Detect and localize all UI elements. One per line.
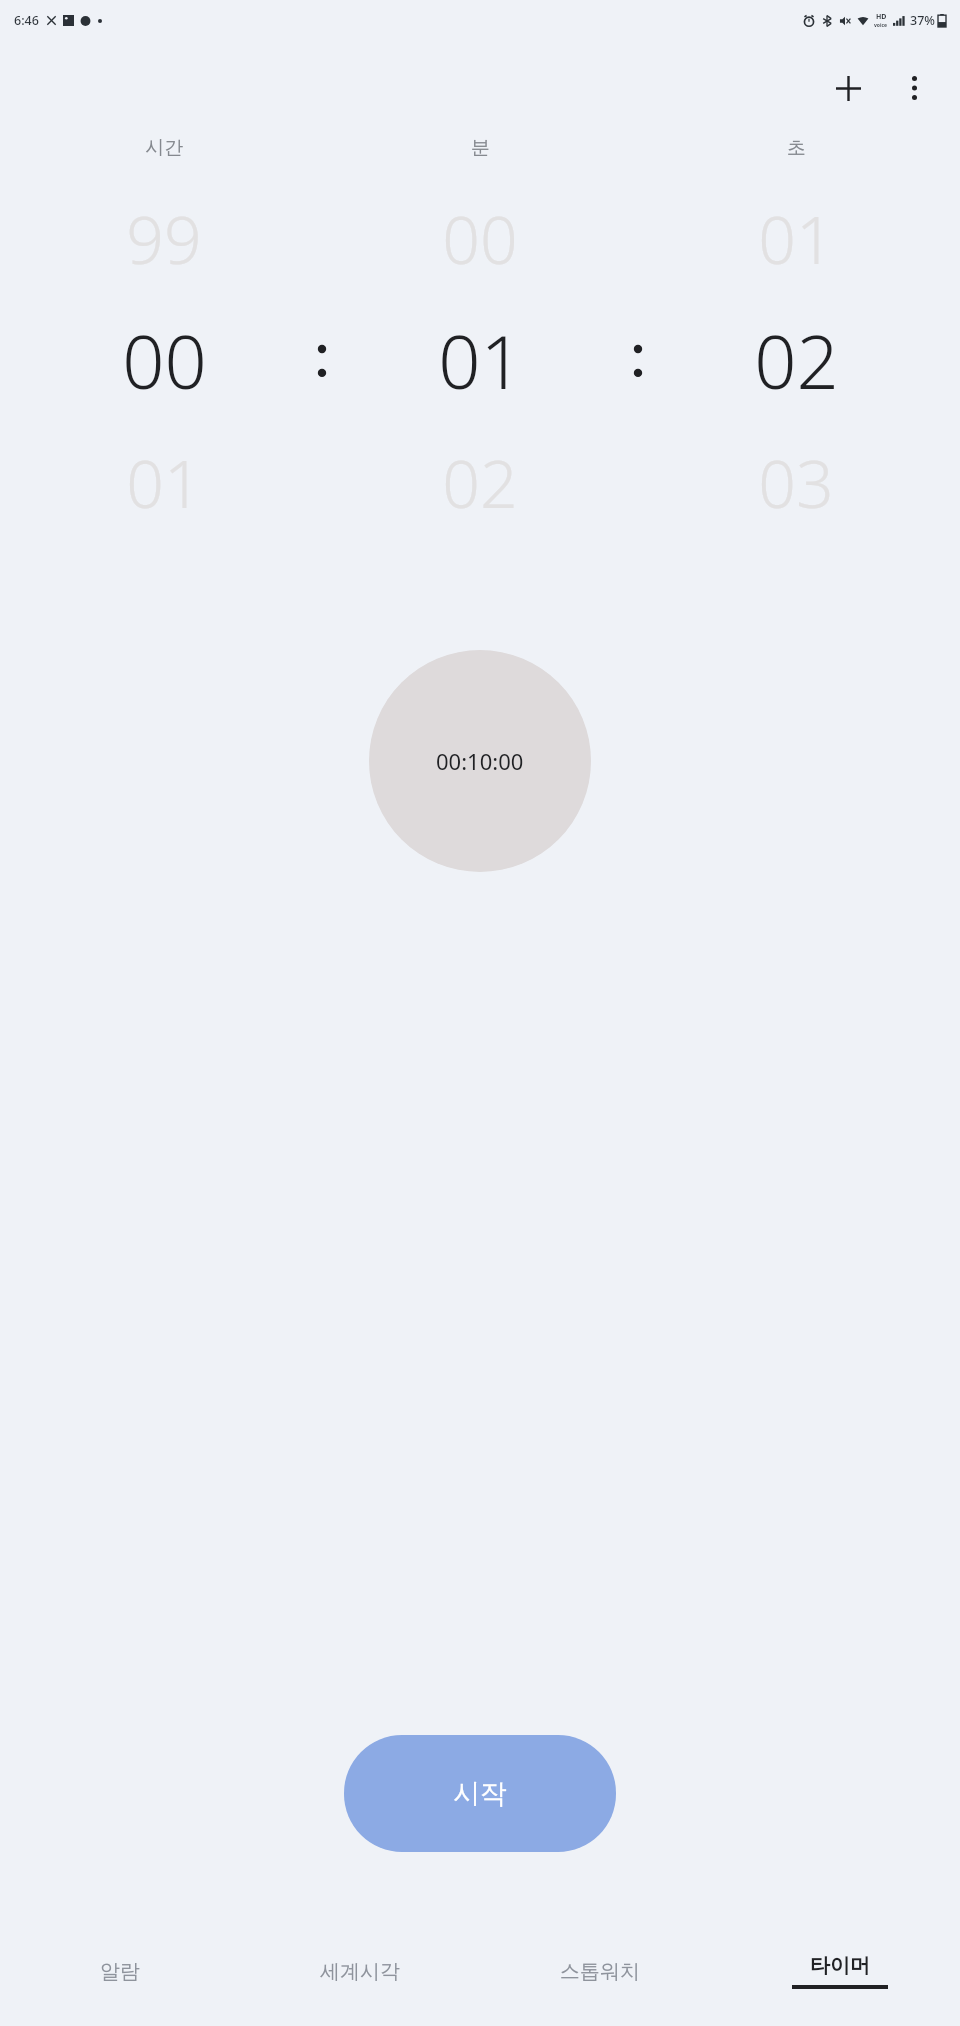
staticText: 타이머 (810, 1953, 870, 1978)
button[interactable]: 세계시각 (240, 1938, 480, 2004)
button[interactable]: 02 (660, 308, 932, 412)
staticText: 6:46 (14, 12, 39, 29)
staticText: 99 (126, 193, 202, 283)
staticText: 01 (126, 437, 202, 527)
staticText: HD (876, 12, 887, 22)
button[interactable]: 스톱워치 (480, 1938, 720, 2004)
staticText: 37% (910, 12, 935, 29)
staticText: 00:10:00 (436, 746, 524, 776)
button[interactable]: 00 (344, 190, 616, 286)
staticText: 02 (754, 310, 839, 411)
staticText: 스톱워치 (560, 1959, 640, 1984)
staticText: voice (874, 22, 888, 29)
staticText: 시간 (145, 136, 183, 160)
staticText: 01 (438, 310, 523, 411)
button[interactable]: 00 (28, 308, 300, 412)
staticText: 초 (787, 136, 806, 160)
button[interactable]: 01 (28, 434, 300, 530)
staticText: 분 (471, 136, 490, 160)
button[interactable]: 타이머 (720, 1938, 960, 2004)
button[interactable]: 시작 (344, 1735, 616, 1852)
staticText: 03 (758, 437, 834, 527)
button[interactable]: 알람 (0, 1938, 240, 2004)
button[interactable]: 01 (660, 190, 932, 286)
button[interactable]: 03 (660, 434, 932, 530)
button[interactable]: 00:10:00 (369, 650, 591, 872)
staticText: 세계시각 (320, 1959, 400, 1984)
button[interactable]: More options (886, 60, 942, 116)
button[interactable]: 99 (28, 190, 300, 286)
staticText: 02 (442, 437, 518, 527)
staticText: 00 (122, 310, 207, 411)
button[interactable]: Add timer (820, 60, 876, 116)
staticText: 알람 (100, 1959, 140, 1984)
staticText: 시작 (453, 1777, 507, 1811)
button[interactable]: 02 (344, 434, 616, 530)
staticText: 01 (758, 193, 834, 283)
button[interactable]: 01 (344, 308, 616, 412)
staticText: 00 (442, 193, 518, 283)
